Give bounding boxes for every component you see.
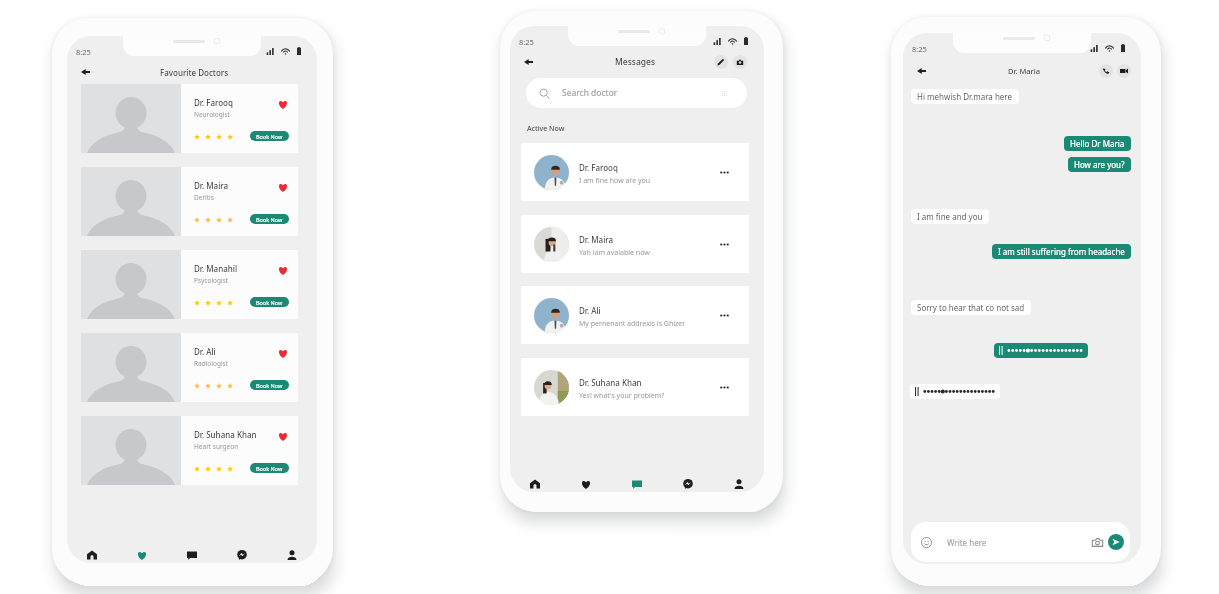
button[interactable]: Camera bbox=[1090, 535, 1104, 549]
staticText: 8:25 bbox=[912, 44, 927, 54]
staticText: Yah iam avalable now bbox=[579, 248, 650, 258]
staticText: 8:25 bbox=[519, 37, 534, 47]
button[interactable]: Messages bbox=[611, 473, 662, 492]
button[interactable]: Favourite bbox=[276, 263, 290, 277]
button[interactable]: Dr. Ali bbox=[521, 286, 749, 344]
button[interactable]: How are you? bbox=[1068, 157, 1131, 172]
button[interactable]: Play voice message bbox=[910, 384, 1000, 399]
staticText: Dr. Ali bbox=[194, 346, 216, 357]
staticText: Dr. Suhana Khan bbox=[579, 377, 642, 388]
staticText: My pernenant addrexis is Ghizer bbox=[579, 319, 686, 329]
staticText: Yes! what's your problem? bbox=[579, 391, 665, 401]
button[interactable]: More options bbox=[715, 235, 733, 253]
button[interactable]: Dr. Maira bbox=[81, 167, 298, 236]
staticText: Favourite Doctors bbox=[160, 67, 229, 78]
button[interactable]: Emoji bbox=[919, 535, 933, 549]
staticText: Deritis bbox=[194, 193, 214, 202]
button[interactable]: Book Now bbox=[250, 380, 289, 390]
staticText: 8:25 bbox=[76, 47, 91, 57]
button[interactable]: Hello Dr Maria bbox=[1064, 136, 1131, 151]
staticText: Dr. Manahil bbox=[194, 263, 238, 274]
button[interactable]: Search doctor bbox=[526, 78, 747, 108]
button[interactable]: More options bbox=[715, 163, 733, 181]
button[interactable]: Book Now bbox=[250, 214, 289, 224]
button[interactable]: Hi mehwish Dr.mara here bbox=[911, 89, 1019, 104]
staticText: Dr. Maira bbox=[194, 180, 229, 191]
button[interactable]: Book Now bbox=[250, 131, 289, 141]
staticText: Hello Dr Maria bbox=[1070, 138, 1125, 149]
button[interactable]: Play voice message bbox=[994, 343, 1088, 358]
button[interactable]: Favourite bbox=[276, 180, 290, 194]
staticText: How are you? bbox=[1074, 159, 1125, 170]
button[interactable]: Favourite bbox=[276, 97, 290, 111]
staticText: Dr. Maria bbox=[1008, 66, 1041, 76]
button[interactable]: Emoji bbox=[911, 522, 1130, 562]
button[interactable]: Dr. Suhana Khan bbox=[81, 416, 298, 485]
button[interactable]: Dr. Maira bbox=[521, 215, 749, 273]
staticText: Messages bbox=[615, 56, 656, 68]
button[interactable]: Sorry to hear that co not sad bbox=[911, 300, 1031, 315]
button[interactable]: Favourite bbox=[276, 429, 290, 443]
button[interactable]: More options bbox=[715, 378, 733, 396]
button[interactable]: I am still suffering from headache bbox=[992, 244, 1131, 259]
staticText: Book Now bbox=[256, 465, 283, 472]
button[interactable]: Profile bbox=[713, 473, 764, 492]
button[interactable]: Book Now bbox=[250, 297, 289, 307]
button[interactable]: Home bbox=[67, 544, 117, 563]
button[interactable]: Dr. Suhana Khan bbox=[521, 358, 749, 416]
button[interactable]: Dr. Farooq bbox=[521, 143, 749, 201]
staticText: Psycologist bbox=[194, 276, 229, 285]
button[interactable]: Dr. Ali bbox=[81, 333, 298, 402]
staticText: Dr. Suhana Khan bbox=[194, 429, 257, 440]
staticText: Write here bbox=[947, 537, 987, 548]
button[interactable]: Messages bbox=[167, 544, 217, 563]
button[interactable]: Edit bbox=[714, 55, 728, 69]
staticText: I am fine how are you bbox=[579, 176, 651, 186]
button[interactable]: Home bbox=[510, 473, 560, 492]
staticText: Dr. Farooq bbox=[194, 97, 233, 108]
button[interactable]: Favourite bbox=[276, 346, 290, 360]
button[interactable]: Send bbox=[1108, 534, 1124, 550]
button[interactable]: Dr. Farooq bbox=[81, 84, 298, 153]
staticText: Dr. Farooq bbox=[579, 162, 618, 173]
button[interactable]: Favourites bbox=[560, 473, 611, 492]
staticText: Radiologist bbox=[194, 359, 229, 368]
button[interactable]: Chat bbox=[662, 473, 713, 492]
button[interactable]: Dr. Manahil bbox=[81, 250, 298, 319]
staticText: I am still suffering from headache bbox=[998, 246, 1125, 257]
button[interactable]: More options bbox=[715, 306, 733, 324]
button[interactable]: Favourites bbox=[117, 544, 167, 563]
staticText: Active Now bbox=[527, 124, 565, 134]
button[interactable]: Back bbox=[519, 54, 537, 70]
button[interactable]: Video call bbox=[1117, 64, 1131, 78]
staticText: Neurologist bbox=[194, 110, 230, 119]
staticText: Book Now bbox=[256, 382, 283, 389]
button[interactable]: Back bbox=[912, 63, 930, 79]
button[interactable]: Profile bbox=[267, 544, 317, 563]
staticText: Book Now bbox=[256, 216, 283, 223]
staticText: Search doctor bbox=[562, 87, 618, 99]
staticText: Heart surgeon bbox=[194, 442, 239, 451]
staticText: Hi mehwish Dr.mara here bbox=[917, 91, 1013, 102]
staticText: Dr. Maira bbox=[579, 234, 614, 245]
staticText: I am fine and you bbox=[917, 211, 983, 222]
button[interactable]: Call bbox=[1099, 64, 1113, 78]
button[interactable]: I am fine and you bbox=[911, 209, 989, 224]
button[interactable]: Book Now bbox=[250, 463, 289, 473]
staticText: Sorry to hear that co not sad bbox=[917, 302, 1025, 313]
staticText: Book Now bbox=[256, 133, 283, 140]
staticText: Dr. Ali bbox=[579, 305, 601, 316]
button[interactable]: Back bbox=[76, 64, 94, 80]
button[interactable]: Chat bbox=[217, 544, 267, 563]
staticText: Book Now bbox=[256, 299, 283, 306]
button[interactable]: Camera bbox=[733, 55, 747, 69]
